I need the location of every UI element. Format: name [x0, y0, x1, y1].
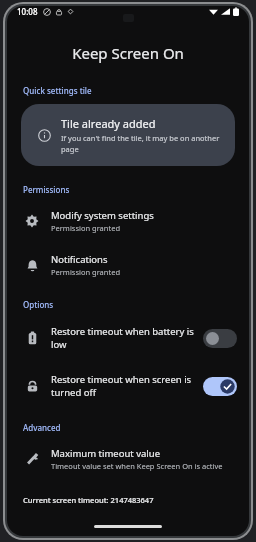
staticText: Keep Screen On: [72, 43, 184, 63]
staticText: Permission granted: [51, 267, 121, 277]
staticText: Timeout value set when Keep Screen On is…: [51, 461, 223, 471]
staticText: Options: [23, 299, 54, 310]
staticText: Notifications: [51, 253, 108, 266]
button[interactable]: Tile already added: [21, 104, 235, 166]
staticText: If you can't find the tile, it may be on…: [61, 133, 225, 154]
button[interactable]: Off: [203, 329, 237, 348]
staticText: Current screen timeout: 2147483647: [23, 495, 154, 505]
staticText: Permissions: [23, 184, 70, 195]
staticText: Advanced: [23, 422, 61, 433]
button[interactable]: Notifications: [7, 247, 249, 283]
staticText: Permission granted: [51, 223, 121, 233]
staticText: Quick settings tile: [23, 85, 92, 96]
staticText: 10:08: [17, 6, 38, 17]
staticText: Maximum timeout value: [51, 447, 161, 460]
button[interactable]: Modify system settings: [7, 203, 249, 239]
button[interactable]: Maximum timeout value: [7, 441, 249, 477]
staticText: Restore timeout when battery is low: [51, 325, 195, 351]
staticText: Restore timeout when screen is turned of…: [51, 373, 195, 399]
staticText: Tile already added: [61, 116, 156, 131]
button[interactable]: On: [203, 377, 237, 396]
staticText: Modify system settings: [51, 209, 154, 222]
button[interactable]: Restore timeout when battery is low: [7, 317, 249, 359]
button[interactable]: Restore timeout when screen is turned of…: [7, 365, 249, 407]
